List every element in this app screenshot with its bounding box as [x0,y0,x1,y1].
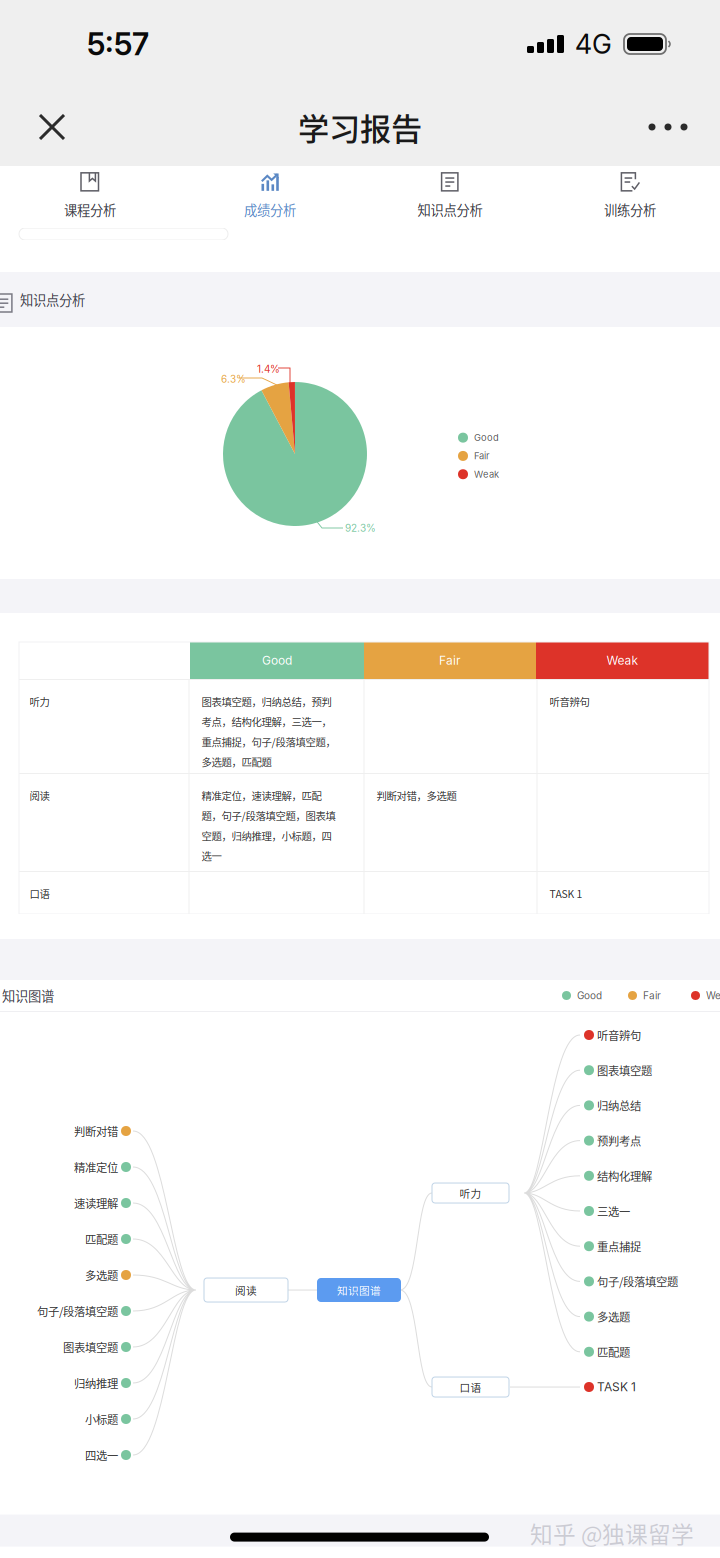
button[interactable]: 成绩分析 [180,164,360,230]
staticText: 4G [575,28,612,60]
staticText: 知乎 @独课留学 [530,1517,694,1549]
staticText: 知识图谱 [337,1282,381,1298]
staticText: 92.3% [345,522,376,534]
staticText: 归纳推理 [74,1375,118,1391]
staticText: 题，句子/段落填空题，图表填 [201,808,335,823]
staticText: 句子/段落填空题 [597,1273,678,1290]
staticText: 判断对错 [74,1123,118,1139]
staticText: Weak [706,989,720,1002]
staticText: 图表填空题，归纳总结，预判 [201,694,331,709]
staticText: 句子/段落填空题 [37,1303,118,1319]
button[interactable]: More [635,94,701,160]
staticText: 匹配题 [597,1344,630,1360]
staticText: 课程分析 [64,200,116,219]
button[interactable]: 知识点分析 [360,164,540,230]
staticText: Fair [643,989,661,1002]
staticText: 结构化理解 [597,1168,652,1184]
staticText: 多选题 [85,1267,118,1283]
staticText: 1.4% [257,363,280,375]
staticText: 速读理解 [74,1195,118,1211]
staticText: 知识点分析 [20,290,85,309]
staticText: 匹配题 [85,1231,118,1247]
staticText: 精准定位，速读理解，匹配 [201,788,321,803]
staticText: Good [474,432,499,443]
staticText: 空题，归纳推理，小标题，四 [201,828,331,843]
staticText: 多选题 [597,1308,630,1325]
staticText: Weak [606,653,638,668]
staticText: 阅读 [29,788,49,803]
staticText: 四选一 [85,1447,118,1463]
staticText: 知识点分析 [417,200,482,219]
staticText: 6.3% [221,373,246,385]
staticText: 口语 [459,1379,481,1395]
staticText: 阅读 [235,1282,257,1298]
staticText: 重点捕捉 [597,1238,641,1254]
button[interactable]: 训练分析 [540,164,720,230]
staticText: 归纳总结 [597,1097,641,1114]
staticText: Fair [439,653,461,668]
staticText: 判断对错，多选题 [376,788,456,803]
button[interactable]: 课程分析 [0,164,180,230]
staticText: Fair [474,450,490,462]
staticText: 知识图谱 [2,986,54,1005]
staticText: 听音辨句 [597,1027,641,1043]
staticText: 预判考点 [597,1132,641,1149]
staticText: 精准定位 [74,1159,118,1175]
staticText: 图表填空题 [597,1062,652,1078]
staticText: 成绩分析 [244,200,296,219]
button[interactable]: Close [19,94,85,160]
staticText: 听力 [29,694,49,709]
staticText: Good [577,989,602,1002]
staticText: 重点捕捉，句子/段落填空题， [201,734,335,749]
staticText: 三选一 [597,1203,630,1219]
staticText: 口语 [29,886,49,901]
staticText: 选一 [201,848,221,863]
staticText: 听力 [459,1185,481,1201]
staticText: 5:57 [87,25,149,62]
staticText: TASK 1 [549,886,582,901]
staticText: 图表填空题 [63,1339,118,1355]
staticText: 小标题 [85,1411,118,1427]
staticText: 多选题，匹配题 [201,754,271,769]
staticText: 训练分析 [604,200,656,219]
staticText: TASK 1 [597,1380,636,1394]
staticText: 学习报告 [298,104,422,150]
staticText: 考点，结构化理解，三选一， [201,714,331,729]
staticText: Good [262,653,292,668]
staticText: Weak [474,469,499,480]
staticText: 听音辨句 [549,694,589,709]
